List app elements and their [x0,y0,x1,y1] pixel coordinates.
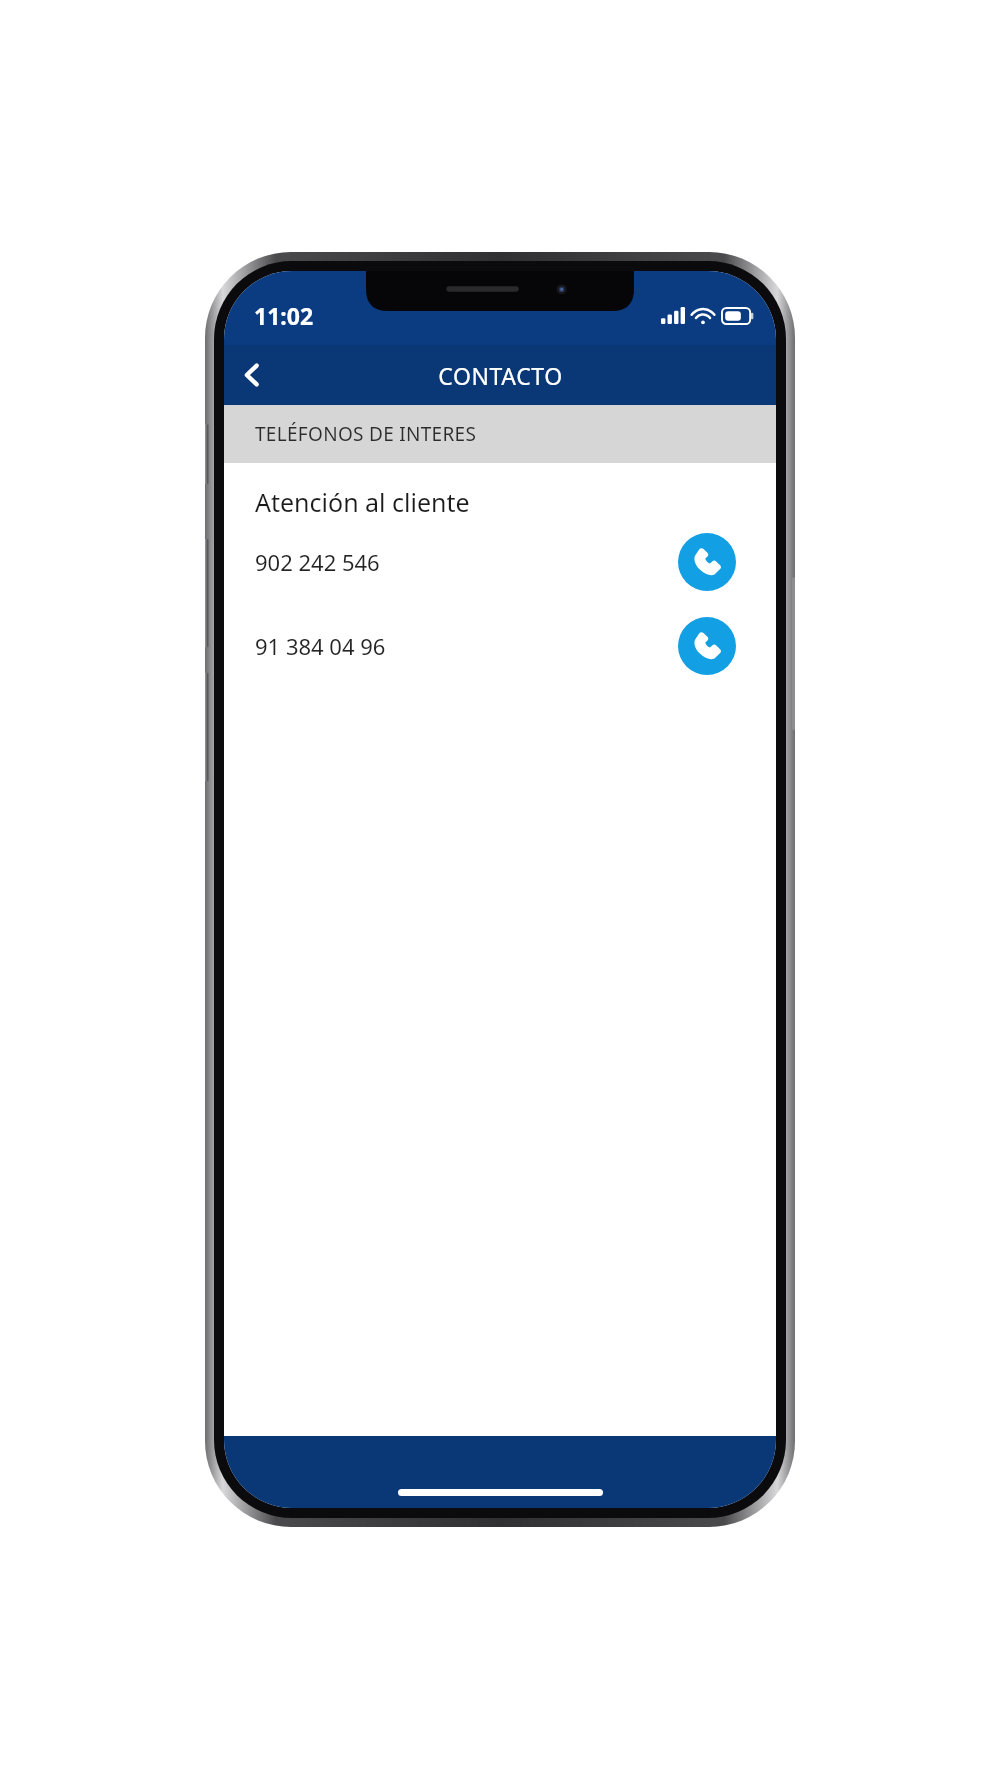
button[interactable]: Back [224,347,280,403]
button[interactable]: Call 91 384 04 96 [678,617,736,675]
button[interactable]: 902 242 546 [224,531,776,593]
staticText: 91 384 04 96 [255,631,678,661]
staticText: 902 242 546 [255,547,678,577]
staticText: CONTACTO [438,360,563,391]
button[interactable]: Call 902 242 546 [678,533,736,591]
staticText: TELÉFONOS DE INTERES [255,421,477,447]
staticText: 11:02 [254,300,314,331]
button[interactable]: 91 384 04 96 [224,615,776,677]
staticText: Atención al cliente [255,485,470,519]
